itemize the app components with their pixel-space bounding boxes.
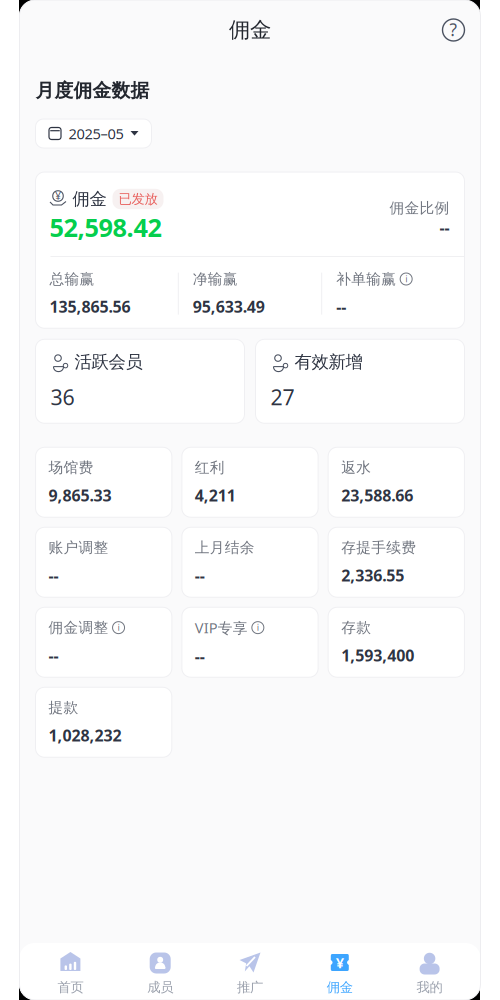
staticText: ?	[449, 18, 457, 41]
staticText: 佣金	[327, 979, 353, 995]
button[interactable]: ¥	[295, 952, 385, 995]
staticText: 账户调整	[48, 539, 108, 557]
button[interactable]: 账户调整	[35, 527, 172, 597]
staticText: 佣金	[72, 188, 106, 210]
staticText: --	[48, 645, 58, 666]
staticText: 已发放	[118, 191, 157, 207]
staticText: i	[405, 272, 407, 285]
staticText: i	[117, 621, 119, 633]
staticText: --	[195, 645, 205, 667]
staticText: 135,865.56	[49, 296, 130, 317]
staticText: 补单输赢	[336, 270, 396, 288]
staticText: 推广	[237, 979, 263, 995]
staticText: VIP专享	[195, 618, 248, 637]
staticText: 首页	[57, 979, 83, 995]
staticText: 1,593,400	[341, 645, 414, 666]
staticText: 有效新增	[294, 351, 362, 373]
staticText: 2,336.55	[341, 565, 404, 586]
staticText: 提款	[48, 699, 78, 717]
staticText: 净输赢	[193, 270, 238, 288]
staticText: 23,588.66	[341, 485, 413, 506]
button[interactable]: 推广	[205, 952, 295, 995]
staticText: 36	[50, 383, 74, 411]
staticText: 1,028,232	[48, 725, 121, 746]
staticText: 9,865.33	[48, 485, 111, 506]
button[interactable]: 成员	[115, 952, 205, 995]
button[interactable]: Help	[441, 18, 465, 42]
staticText: --	[439, 217, 449, 238]
staticText: 场馆费	[48, 459, 93, 477]
staticText: ¥	[55, 188, 61, 203]
staticText: 红利	[195, 459, 225, 477]
button[interactable]: 有效新增	[255, 339, 464, 423]
staticText: 52,598.42	[49, 210, 161, 244]
button[interactable]: 我的	[385, 952, 474, 995]
button[interactable]: VIP专享	[182, 607, 318, 677]
staticText: --	[336, 296, 346, 317]
staticText: 我的	[417, 979, 443, 995]
button[interactable]: 2025–05	[35, 119, 151, 148]
staticText: 存提手续费	[341, 539, 416, 557]
button[interactable]: 红利	[182, 447, 318, 517]
button[interactable]: 活跃会员	[35, 339, 244, 423]
staticText: --	[48, 565, 58, 586]
staticText: ¥	[336, 953, 344, 972]
staticText: 佣金调整	[48, 619, 108, 637]
button[interactable]: 佣金调整	[35, 607, 172, 677]
button[interactable]: 提款	[35, 687, 172, 757]
staticText: 返水	[341, 459, 371, 477]
button[interactable]: 上月结余	[182, 527, 318, 597]
staticText: --	[195, 565, 205, 586]
staticText: 27	[270, 383, 294, 411]
staticText: 95,633.49	[193, 296, 265, 317]
button[interactable]: 存提手续费	[328, 527, 464, 597]
staticText: 月度佣金数据	[35, 79, 149, 102]
staticText: 上月结余	[195, 539, 255, 557]
staticText: i	[257, 621, 259, 633]
staticText: 佣金比例	[389, 199, 449, 217]
button[interactable]: 存款	[328, 607, 464, 677]
staticText: 2025–05	[68, 124, 123, 143]
staticText: 活跃会员	[74, 351, 142, 373]
staticText: 佣金	[229, 17, 271, 43]
staticText: 存款	[341, 619, 371, 637]
button[interactable]: 场馆费	[35, 447, 172, 517]
button[interactable]: 返水	[328, 447, 464, 517]
staticText: 成员	[147, 979, 173, 995]
staticText: 4,211	[195, 485, 236, 506]
button[interactable]: 首页	[25, 952, 115, 995]
staticText: 总输赢	[49, 270, 94, 288]
